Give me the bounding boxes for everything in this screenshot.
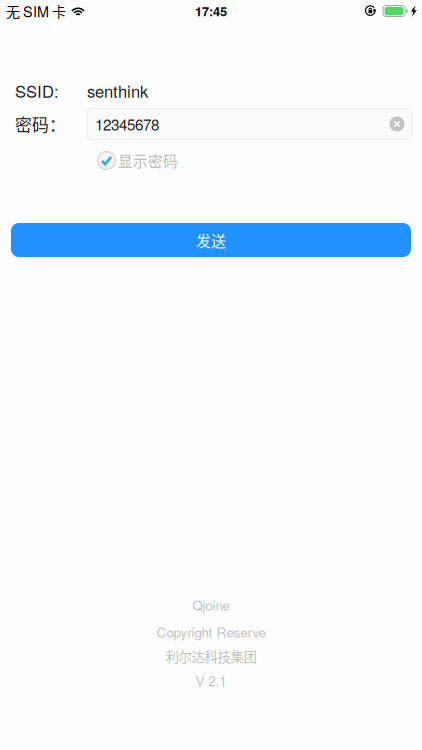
staticText: 显示密码 xyxy=(118,150,178,171)
staticText: V 2.1 xyxy=(195,671,226,690)
staticText: 发送 xyxy=(196,229,226,251)
staticText: 17:45 xyxy=(195,2,227,20)
staticText: 卡 xyxy=(52,1,66,21)
staticText: 12345678 xyxy=(95,113,159,135)
staticText: 密码： xyxy=(15,112,66,136)
staticText: Copyright Reserve xyxy=(156,622,265,641)
staticText: senthink xyxy=(87,79,148,102)
staticText: 无 xyxy=(6,1,20,21)
staticText: SSID: xyxy=(15,79,59,102)
button[interactable]: 发送 xyxy=(11,223,411,257)
staticText: SIM xyxy=(23,1,49,21)
staticText: Qjoine xyxy=(192,595,229,614)
button[interactable]: 显示密码 xyxy=(97,150,178,170)
staticText: 利尔达科技集团 xyxy=(165,646,256,666)
